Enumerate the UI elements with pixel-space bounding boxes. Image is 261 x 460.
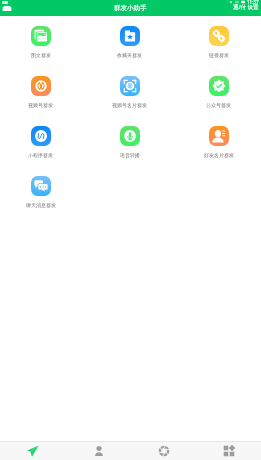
button[interactable]: Settings bbox=[131, 442, 196, 460]
staticText: 好友名片群发 bbox=[204, 152, 234, 158]
button[interactable]: 聊天消息群发 bbox=[24, 176, 58, 208]
staticText: 聊天消息群发 bbox=[26, 202, 56, 208]
button[interactable]: 视频号群发 bbox=[26, 76, 55, 108]
button[interactable]: Apps bbox=[196, 442, 261, 460]
button[interactable]: 收藏夹群发 bbox=[115, 26, 144, 58]
staticText: 语音转播 bbox=[120, 152, 140, 158]
button[interactable]: 小程序群发 bbox=[26, 126, 55, 158]
button[interactable]: 公众号群发 bbox=[204, 76, 233, 108]
button[interactable]: 视频号名片群发 bbox=[110, 76, 149, 108]
staticText: 链接群发 bbox=[209, 52, 229, 58]
staticText: 群发小助手 bbox=[114, 4, 147, 12]
button[interactable]: Send bbox=[0, 442, 66, 460]
staticText: 小程序群发 bbox=[28, 152, 53, 158]
staticText: 收藏夹群发 bbox=[117, 52, 142, 58]
button[interactable]: Contacts bbox=[66, 442, 131, 460]
button[interactable]: 链接群发 bbox=[207, 26, 231, 58]
staticText: 图文群发 bbox=[31, 52, 51, 58]
button[interactable]: 图文群发 bbox=[29, 26, 53, 58]
staticText: 公众号群发 bbox=[206, 102, 231, 108]
staticText: 通/付 设置 bbox=[233, 3, 259, 11]
button[interactable]: 好友名片群发 bbox=[202, 126, 236, 158]
staticText: 视频号名片群发 bbox=[112, 102, 147, 108]
button[interactable]: 语音转播 bbox=[118, 126, 142, 158]
staticText: 视频号群发 bbox=[28, 102, 53, 108]
staticText: 11:37 bbox=[247, 0, 259, 5]
